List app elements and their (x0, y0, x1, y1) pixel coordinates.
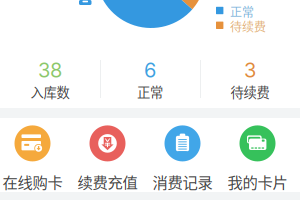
button[interactable]: 续费充值 (70, 118, 145, 192)
staticText: 入库数 (30, 82, 69, 101)
staticText: 待续费 (230, 18, 266, 35)
button[interactable]: 在线购卡 (0, 118, 70, 192)
staticText: 在线购卡 (2, 170, 62, 193)
staticText: 续费充值 (77, 170, 137, 193)
staticText: 3 (244, 58, 256, 82)
staticText: 正常 (230, 3, 254, 20)
staticText: 正常 (137, 82, 163, 101)
staticText: 我的卡片 (227, 170, 287, 193)
staticText: 消费记录 (152, 170, 212, 193)
button[interactable]: 我的卡片 (220, 118, 295, 192)
staticText: 38 (38, 58, 62, 82)
button[interactable]: 消费记录 (145, 118, 220, 192)
staticText: 6 (144, 58, 156, 82)
staticText: 待续费 (230, 82, 269, 101)
